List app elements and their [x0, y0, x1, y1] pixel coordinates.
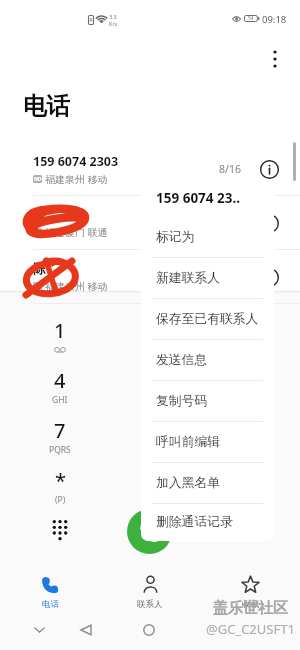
staticText: 联系人 — [137, 599, 163, 610]
button[interactable]: 4 — [36, 367, 84, 406]
button[interactable]: 发送信息 — [141, 339, 274, 380]
button[interactable]: Call details — [259, 159, 279, 179]
staticText: 8/16 — [219, 162, 241, 176]
staticText: 3.3 — [109, 13, 117, 20]
button[interactable]: 蔡 — [0, 196, 300, 250]
staticText: 09:18 — [262, 13, 287, 26]
staticText: K/s — [109, 20, 118, 27]
staticText: PQRS — [49, 444, 71, 456]
staticText: 删除通话记录 — [156, 514, 233, 530]
staticText: @GC_C2USFT1 — [206, 620, 295, 638]
button[interactable]: * — [36, 467, 84, 506]
button[interactable]: 1 — [36, 317, 84, 353]
staticText: HD — [34, 229, 42, 236]
button[interactable]: 保存至已有联系人 — [141, 298, 274, 339]
staticText: 新建联系人 — [156, 270, 220, 286]
staticText: 保存至已有联系人 — [156, 311, 259, 327]
staticText: 159 6074 23.. — [156, 189, 241, 207]
staticText: HD — [34, 283, 42, 290]
button[interactable]: Call details — [259, 213, 279, 233]
button[interactable]: 删除通话记录 — [141, 503, 274, 541]
staticText: 7 — [54, 417, 66, 444]
button[interactable]: 电话 — [0, 568, 100, 614]
staticText: * — [55, 467, 66, 494]
staticText: 1 — [54, 317, 66, 344]
button[interactable]: 标记为 — [141, 216, 274, 257]
button[interactable]: 159 6074 2303 — [0, 142, 300, 196]
staticText: 159 6074 2303 — [33, 153, 119, 170]
button[interactable]: 收藏 — [200, 568, 300, 614]
staticText: 54 — [248, 15, 254, 22]
staticText: 盖乐世社区 — [213, 599, 288, 618]
button[interactable]: Call details — [259, 267, 279, 287]
staticText: (P) — [55, 494, 66, 506]
button[interactable]: 呼叫前编辑 — [141, 421, 274, 462]
button[interactable]: 陈 — [0, 250, 300, 304]
button[interactable]: Home — [136, 617, 162, 643]
staticText: 4 — [54, 367, 66, 394]
staticText: 复制号码 — [156, 393, 208, 409]
staticText: 收藏 — [242, 599, 259, 610]
staticText: 福建泉州 移动 — [45, 279, 108, 293]
staticText: 福建厦门 联通 — [45, 225, 108, 239]
button[interactable]: Call — [127, 509, 172, 554]
button[interactable]: 加入黑名单 — [141, 462, 274, 503]
button[interactable]: 复制号码 — [141, 380, 274, 421]
staticText: 呼叫前编辑 — [156, 434, 220, 450]
staticText: GHI — [52, 394, 68, 406]
button[interactable]: Dialpad — [46, 514, 74, 542]
staticText: 陈 — [33, 261, 46, 277]
staticText: HD — [34, 176, 42, 183]
button[interactable]: More options — [262, 46, 288, 72]
staticText: 福建泉州 移动 — [45, 172, 108, 186]
button[interactable]: Back — [73, 617, 99, 643]
staticText: 加入黑名单 — [156, 475, 220, 491]
staticText: 电话 — [23, 91, 70, 121]
staticText: 标记为 — [156, 229, 195, 245]
button[interactable]: Hide keyboard — [26, 617, 52, 643]
button[interactable]: 新建联系人 — [141, 257, 274, 298]
staticText: 电话 — [42, 599, 59, 610]
staticText: 蔡 — [33, 207, 46, 223]
button[interactable]: 7 — [36, 417, 84, 456]
button[interactable]: 联系人 — [100, 568, 200, 614]
staticText: 发送信息 — [156, 352, 208, 368]
